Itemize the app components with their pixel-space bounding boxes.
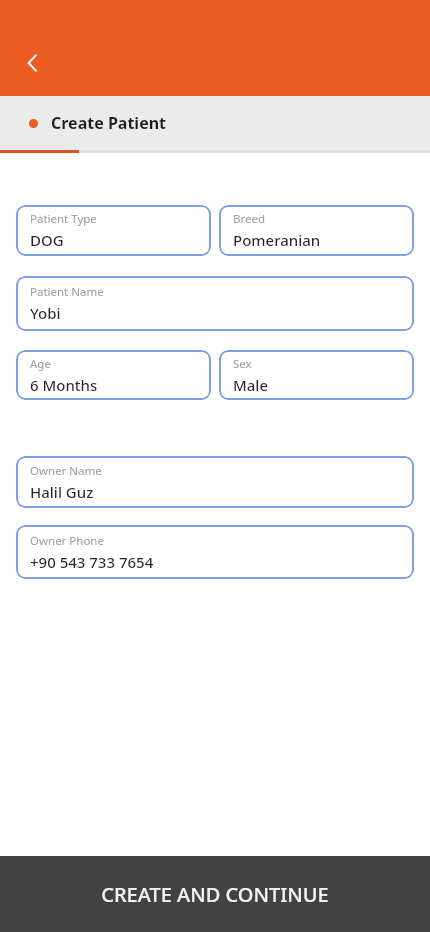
staticText: +90 543 733 7654 (30, 552, 154, 572)
staticText: Patient Name (30, 284, 104, 300)
button[interactable]: Age (16, 350, 211, 400)
button[interactable]: Sex (219, 350, 414, 400)
button[interactable]: Patient Name (16, 276, 414, 331)
staticText: Halil Guz (30, 482, 94, 502)
staticText: 6 Months (30, 375, 98, 395)
staticText: Male (233, 375, 269, 395)
staticText: CREATE AND CONTINUE (101, 881, 329, 908)
staticText: Owner Phone (30, 533, 104, 549)
staticText: Create Patient (51, 112, 167, 134)
staticText: Age (30, 356, 51, 372)
button[interactable]: Create Patient (0, 96, 430, 150)
staticText: Pomeranian (233, 230, 321, 250)
staticText: Sex (233, 356, 252, 372)
staticText: Patient Type (30, 211, 97, 227)
staticText: Owner Name (30, 463, 102, 479)
button[interactable]: Patient Type (16, 205, 211, 256)
button[interactable]: CREATE AND CONTINUE (0, 856, 430, 932)
staticText: Yobi (30, 303, 61, 323)
button[interactable]: Owner Name (16, 456, 414, 508)
button[interactable]: Back (12, 42, 54, 84)
button[interactable]: Breed (219, 205, 414, 256)
staticText: Breed (233, 211, 266, 227)
staticText: DOG (30, 230, 64, 250)
button[interactable]: Owner Phone (16, 525, 414, 579)
